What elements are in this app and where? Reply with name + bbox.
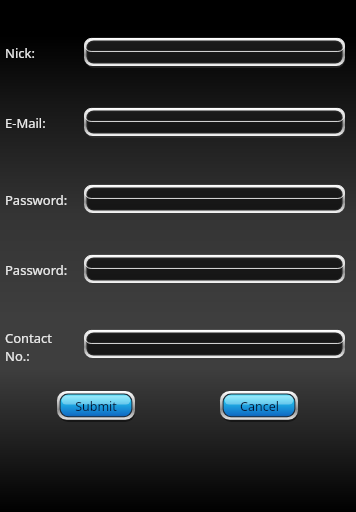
button[interactable]: Cancel xyxy=(220,391,298,421)
staticText: Contact xyxy=(5,329,53,347)
staticText: E-Mail: xyxy=(5,114,46,132)
button[interactable] xyxy=(84,38,345,67)
button[interactable] xyxy=(84,185,345,214)
staticText: Cancel xyxy=(240,398,279,415)
button[interactable] xyxy=(84,108,345,137)
staticText: No.: xyxy=(5,347,30,365)
staticText: Submit xyxy=(75,398,117,415)
staticText: Password: xyxy=(5,261,68,279)
button[interactable] xyxy=(84,255,345,284)
staticText: Password: xyxy=(5,191,68,209)
staticText: Nick: xyxy=(5,44,35,62)
button[interactable] xyxy=(84,330,345,359)
button[interactable]: Submit xyxy=(57,391,135,421)
